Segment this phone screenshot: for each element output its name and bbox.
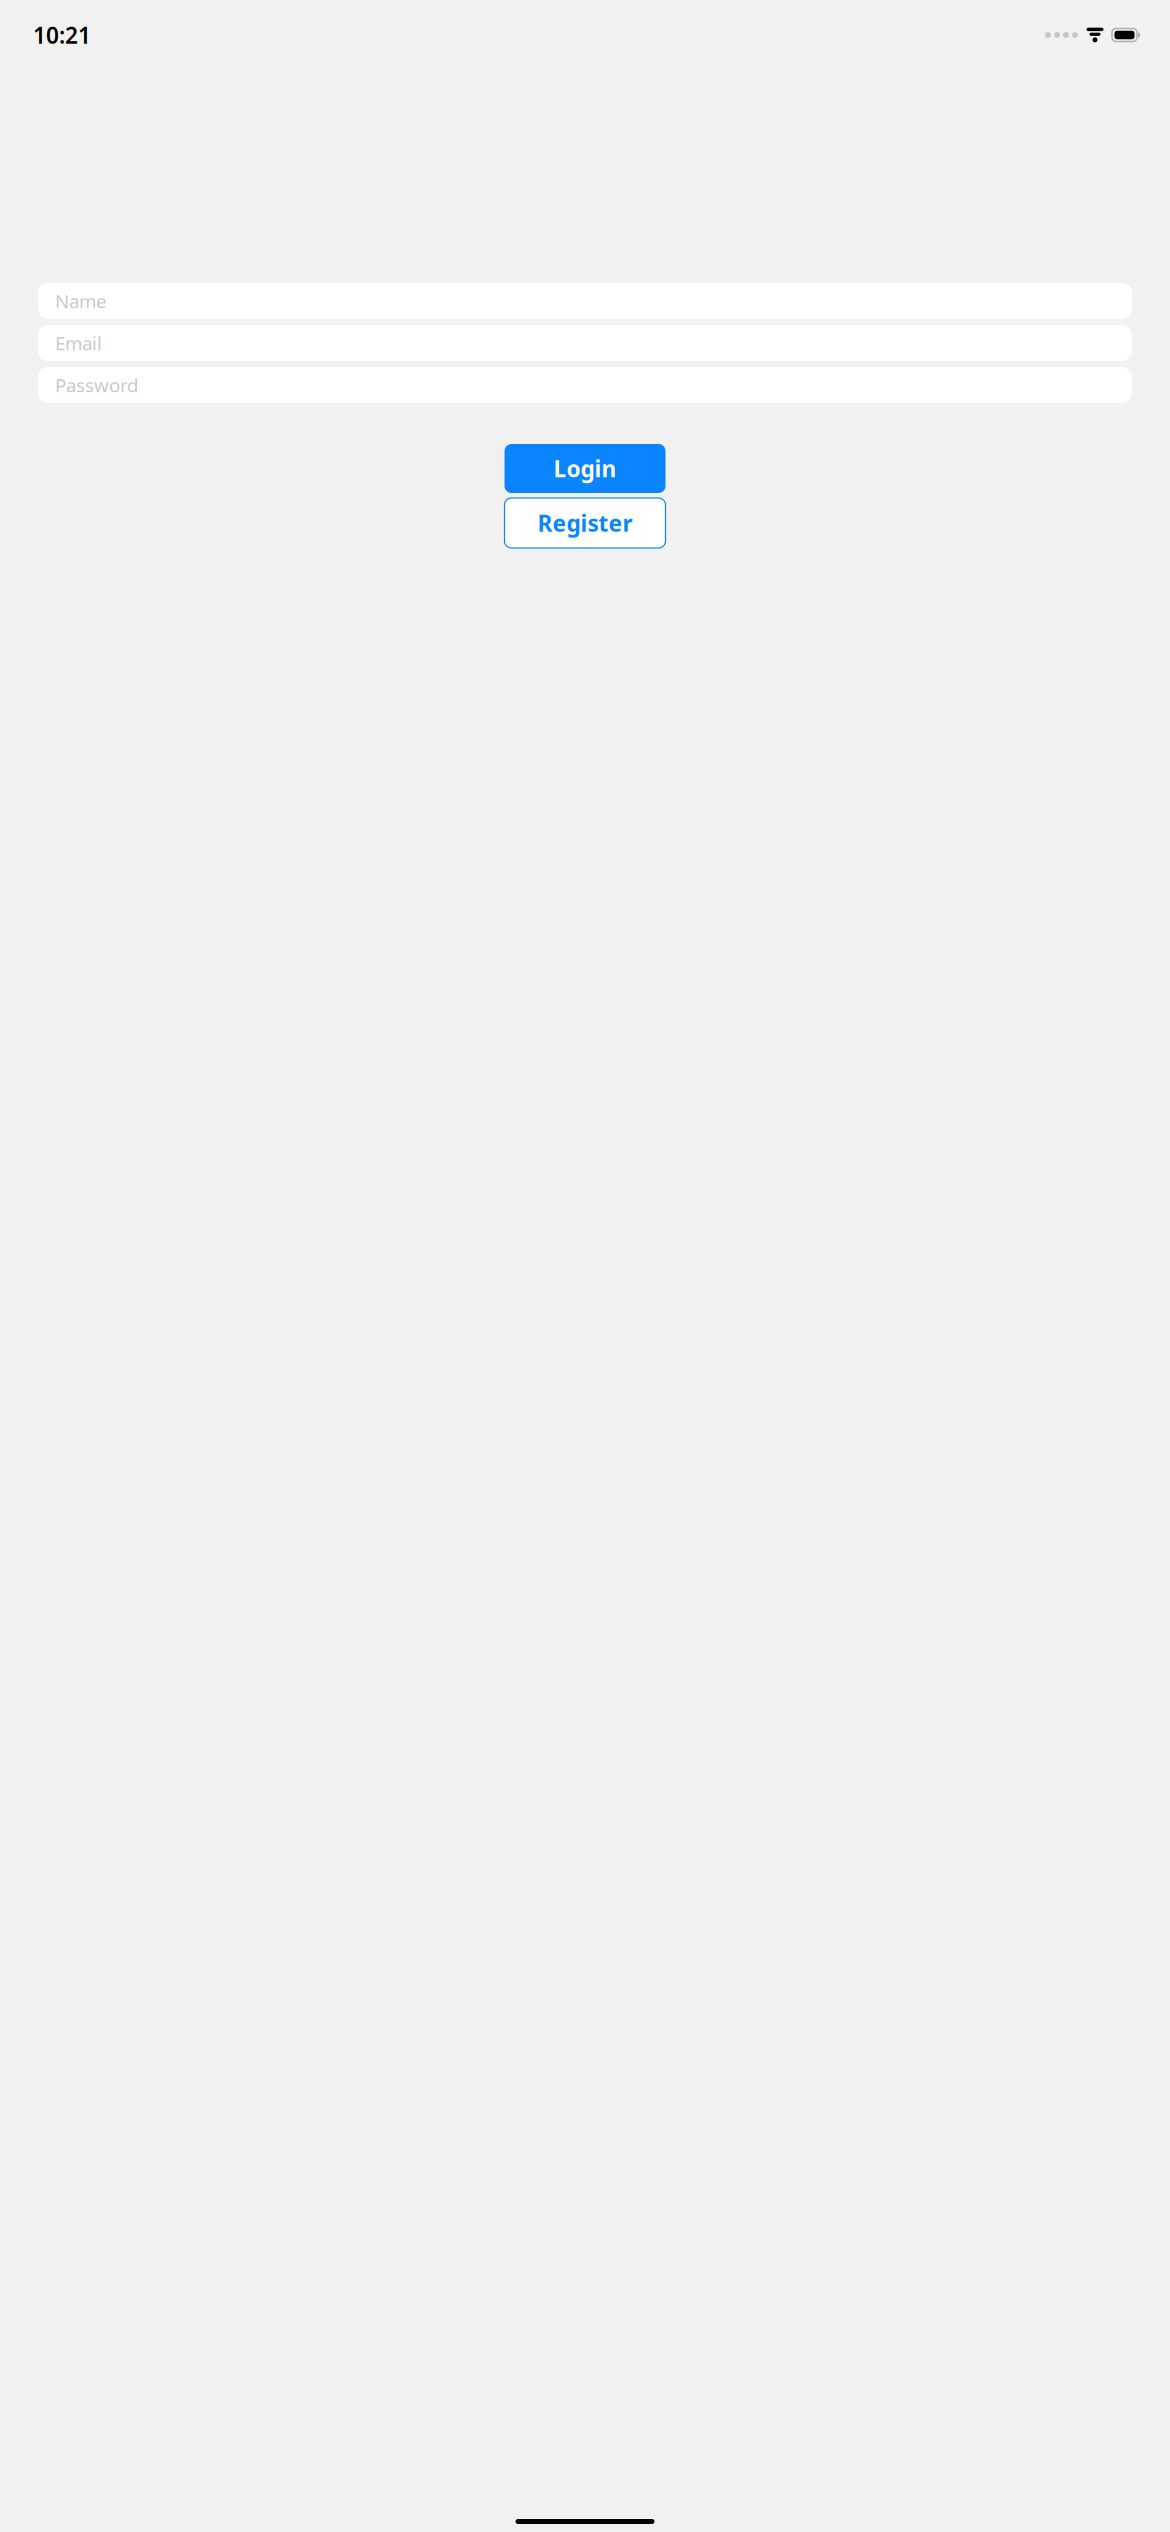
staticText: 10:21: [33, 20, 91, 50]
button[interactable]: Login: [504, 444, 665, 493]
staticText: Email: [55, 331, 102, 355]
button[interactable]: Register: [504, 498, 665, 548]
button[interactable]: Password: [38, 367, 1132, 403]
button[interactable]: Name: [38, 283, 1132, 319]
staticText: Register: [537, 508, 632, 538]
staticText: Password: [55, 373, 138, 397]
button[interactable]: Email: [38, 325, 1132, 361]
staticText: Login: [553, 453, 616, 483]
staticText: Name: [55, 289, 107, 313]
